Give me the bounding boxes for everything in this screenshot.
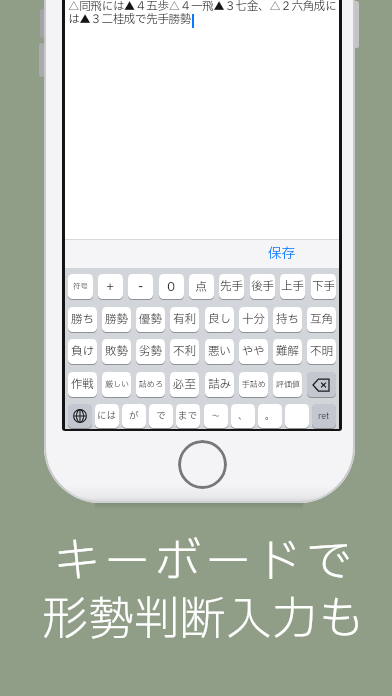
staticText: 符号 [73, 281, 88, 292]
staticText: 不利 [173, 343, 196, 360]
staticText: で [156, 409, 166, 423]
button[interactable]: 不利 [170, 339, 199, 364]
button[interactable]: 良し [205, 307, 234, 332]
button[interactable]: 評価値 [273, 372, 302, 397]
staticText: 優勢 [139, 311, 162, 328]
staticText: 劣勢 [139, 343, 162, 360]
button[interactable]: 保存 [268, 244, 295, 264]
button[interactable]: 詰み [205, 372, 234, 397]
button[interactable]: 優勢 [136, 307, 165, 332]
staticText: が [129, 409, 139, 423]
button[interactable]: には [95, 404, 119, 428]
staticText: 詰めろ [139, 379, 163, 391]
staticText: やや [242, 343, 265, 360]
button[interactable]: 点 [189, 274, 214, 299]
staticText: 不明 [310, 343, 333, 360]
staticText: 負け [71, 343, 94, 360]
staticText: 。 [265, 409, 275, 423]
button[interactable]: 手詰め [239, 372, 268, 397]
staticText: 十分 [242, 311, 265, 328]
button[interactable]: 劣勢 [136, 339, 165, 364]
staticText: - [138, 277, 144, 296]
button[interactable]: 持ち [273, 307, 302, 332]
button[interactable]: 厳しい [102, 372, 131, 397]
staticText: 持ち [276, 311, 299, 328]
staticText: 悪い [208, 343, 231, 360]
button[interactable]: 後手 [250, 274, 275, 299]
button[interactable]: ～ [204, 404, 228, 428]
staticText: 下手 [312, 278, 335, 295]
staticText: ret [318, 410, 330, 423]
button[interactable]: 。 [258, 404, 282, 428]
staticText: は▲３二桂成で先手勝勢 [68, 11, 191, 28]
button[interactable]: 、 [231, 404, 255, 428]
staticText: ～ [211, 409, 221, 423]
button[interactable]: 十分 [239, 307, 268, 332]
staticText: 互角 [310, 311, 333, 328]
staticText: 詰み [208, 376, 231, 393]
staticText: 手詰め [242, 379, 266, 391]
staticText: 有利 [173, 311, 196, 328]
button[interactable] [68, 404, 92, 428]
button[interactable]: 敗勢 [102, 339, 131, 364]
staticText: キーボードで [9, 528, 392, 597]
staticText: 勝勢 [105, 311, 128, 328]
button[interactable]: 符号 [68, 274, 93, 299]
staticText: 後手 [251, 278, 274, 295]
button[interactable]: 0 [159, 274, 184, 299]
button[interactable]: 不明 [307, 339, 336, 364]
button[interactable]: 負け [68, 339, 97, 364]
staticText: 、 [238, 409, 248, 423]
staticText: 良し [208, 311, 231, 328]
button[interactable]: 詰めろ [136, 372, 165, 397]
button[interactable]: - [128, 274, 153, 299]
button[interactable] [285, 404, 309, 428]
button[interactable]: 勝ち [68, 307, 97, 332]
button[interactable]: ret [312, 404, 336, 428]
staticText: 0 [167, 277, 176, 296]
button[interactable]: が [122, 404, 146, 428]
staticText: 敗勢 [105, 343, 128, 360]
button[interactable]: 作戦 [68, 372, 97, 397]
button[interactable]: で [149, 404, 173, 428]
staticText: 上手 [281, 278, 304, 295]
staticText: 難解 [276, 343, 299, 360]
staticText: まで [178, 409, 198, 423]
staticText: 点 [195, 278, 208, 296]
staticText: 先手 [220, 278, 243, 295]
button[interactable]: 先手 [219, 274, 244, 299]
staticText: + [106, 277, 115, 296]
staticText: 勝ち [71, 311, 94, 328]
button[interactable]: やや [239, 339, 268, 364]
button[interactable]: まで [176, 404, 200, 428]
staticText: 評価値 [276, 379, 300, 391]
button[interactable]: + [98, 274, 123, 299]
staticText: 必至 [173, 376, 196, 393]
button[interactable] [178, 440, 227, 489]
button[interactable]: 下手 [311, 274, 336, 299]
staticText: △同飛には▲４五歩△４一飛▲３七金、△２六角成に [68, 0, 337, 15]
button[interactable]: 勝勢 [102, 307, 131, 332]
staticText: 厳しい [105, 379, 129, 391]
staticText: 形勢判断入力も [7, 586, 392, 655]
button[interactable]: 悪い [205, 339, 234, 364]
button[interactable]: 互角 [307, 307, 336, 332]
button[interactable]: 難解 [273, 339, 302, 364]
staticText: には [97, 409, 117, 423]
staticText: 保存 [268, 244, 295, 264]
button[interactable]: 必至 [170, 372, 199, 397]
button[interactable]: 上手 [280, 274, 305, 299]
button[interactable]: 有利 [170, 307, 199, 332]
staticText: 作戦 [71, 376, 94, 393]
button[interactable] [307, 372, 336, 397]
